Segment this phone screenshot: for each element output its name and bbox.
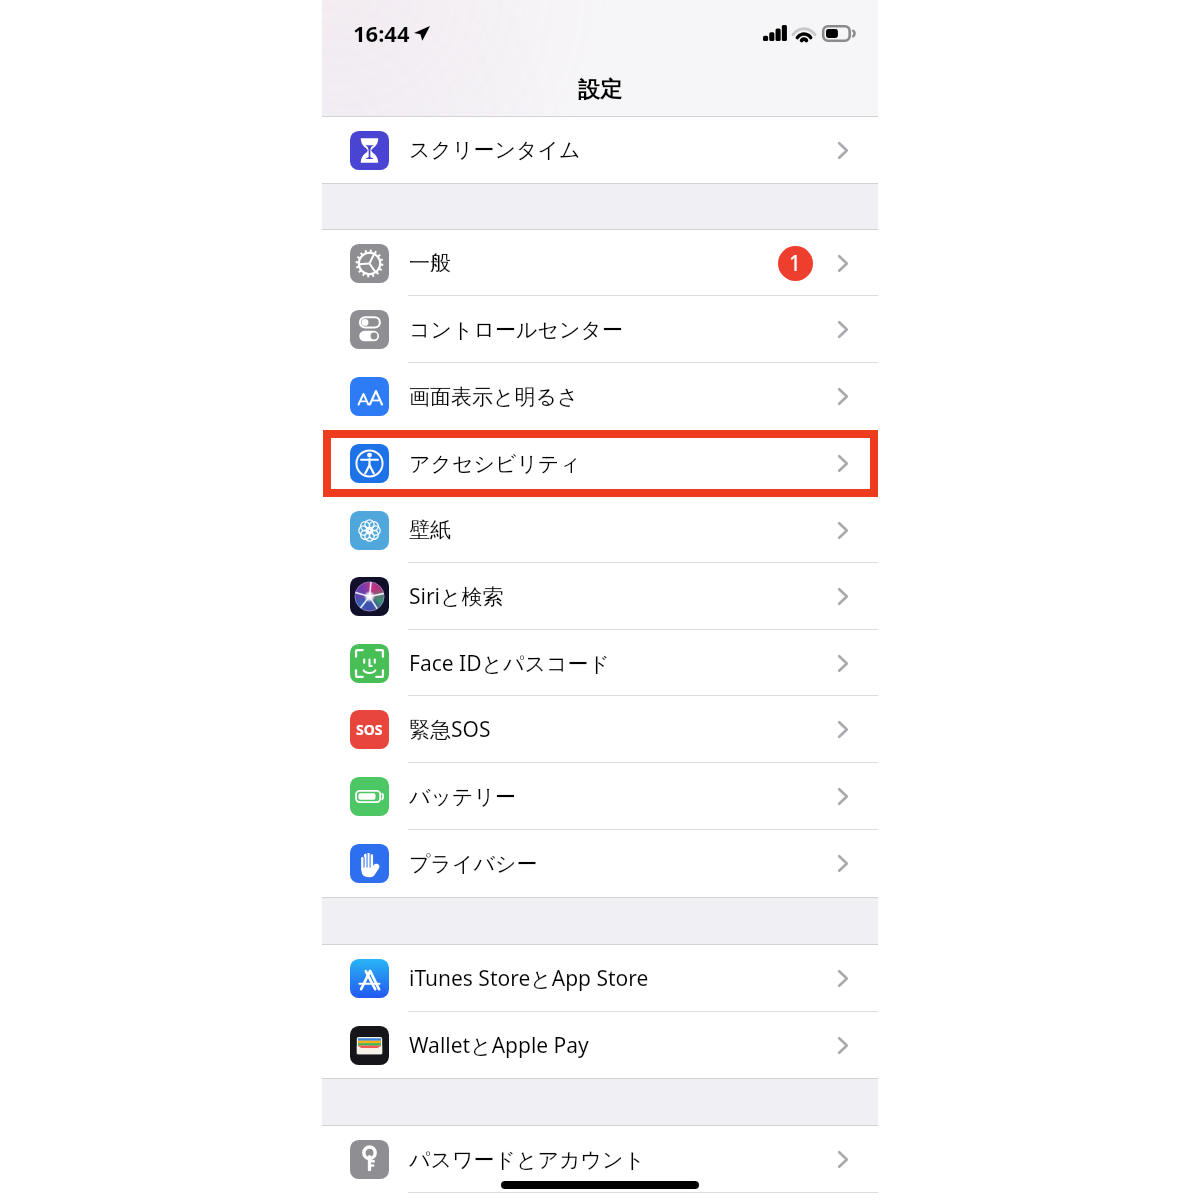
button[interactable]: 緊急SOS: [322, 696, 878, 763]
button[interactable]: WalletとApple Pay: [322, 1012, 878, 1078]
staticText: 16:44: [353, 18, 410, 48]
button[interactable]: スクリーンタイム: [322, 117, 878, 183]
button[interactable]: Siriと検索: [322, 563, 878, 630]
staticText: Siriと検索: [409, 582, 504, 611]
button[interactable]: Face IDとパスコード: [322, 630, 878, 696]
staticText: SOS: [356, 720, 383, 739]
staticText: プライバシー: [409, 851, 538, 877]
staticText: iTunes StoreとApp Store: [409, 964, 649, 993]
button[interactable]: 一般: [322, 230, 878, 296]
staticText: コントロールセンター: [409, 317, 623, 343]
staticText: 壁紙: [409, 517, 451, 543]
button[interactable]: iTunes StoreとApp Store: [322, 945, 878, 1012]
button[interactable]: パスワードとアカウント: [322, 1126, 878, 1193]
staticText: 緊急SOS: [409, 715, 491, 744]
staticText: アクセシビリティ: [409, 451, 581, 477]
button[interactable]: 画面表示と明るさ: [322, 363, 878, 430]
staticText: WalletとApple Pay: [409, 1031, 589, 1060]
staticText: Face IDとパスコード: [409, 649, 610, 678]
button[interactable]: コントロールセンター: [322, 296, 878, 363]
button[interactable]: プライバシー: [322, 830, 878, 897]
staticText: 1: [789, 249, 802, 278]
button[interactable]: アクセシビリティ: [322, 430, 878, 497]
button[interactable]: 壁紙: [322, 497, 878, 563]
button[interactable]: バッテリー: [322, 763, 878, 830]
staticText: パスワードとアカウント: [409, 1147, 645, 1173]
staticText: 画面表示と明るさ: [409, 384, 579, 410]
staticText: バッテリー: [409, 784, 516, 810]
staticText: 一般: [409, 250, 451, 276]
staticText: スクリーンタイム: [409, 137, 581, 163]
staticText: 設定: [578, 76, 622, 104]
